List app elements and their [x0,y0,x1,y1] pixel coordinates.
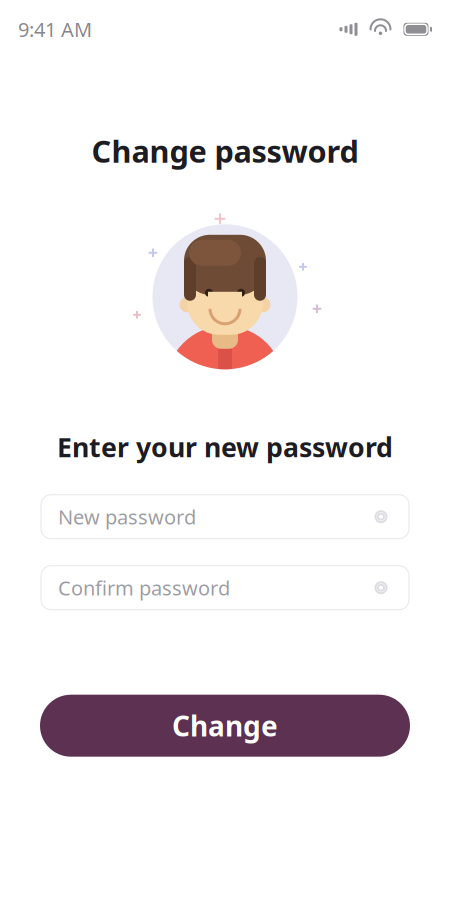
staticText: Change [172,707,278,744]
staticText: 9:41 AM [18,16,92,43]
staticText: Enter your new password [57,429,393,465]
staticText: Change password [91,131,358,171]
staticText: New password [58,503,196,530]
button[interactable]: Change [40,695,410,757]
button[interactable]: Confirm password [41,566,409,610]
button[interactable]: New password [41,495,409,539]
staticText: Confirm password [58,574,230,601]
